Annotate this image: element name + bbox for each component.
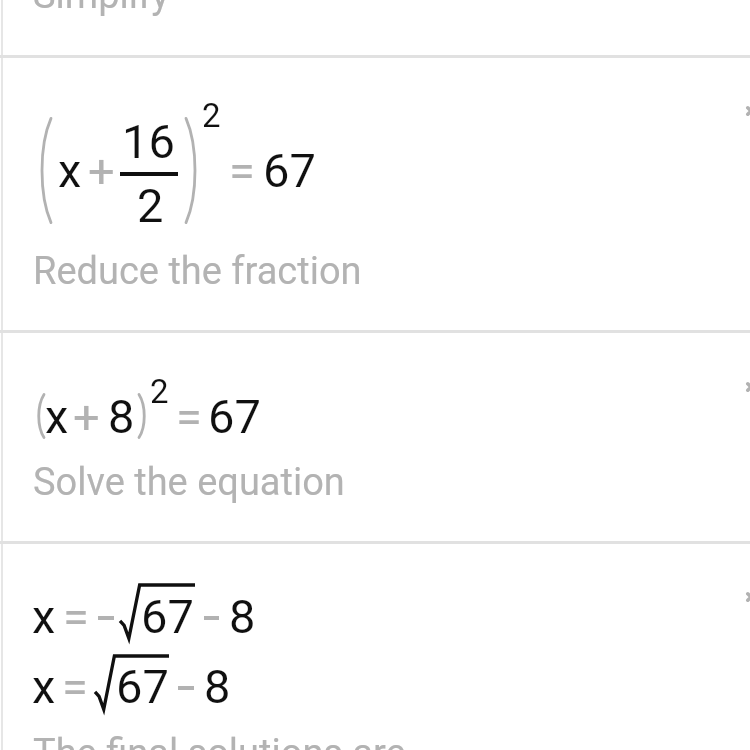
staticText: =	[229, 143, 255, 198]
staticText: +	[73, 389, 100, 444]
staticText: +	[88, 143, 115, 198]
staticText: 67	[116, 659, 169, 714]
staticText: =	[63, 589, 89, 644]
staticText: 67	[208, 389, 261, 444]
staticText: 2	[137, 178, 164, 233]
button[interactable]	[0, 57, 750, 331]
button[interactable]	[0, 333, 750, 541]
staticText: =	[176, 389, 202, 444]
button[interactable]: Expand step	[723, 569, 750, 625]
staticText: 67	[141, 589, 194, 644]
staticText: =	[62, 659, 88, 714]
staticText: x	[45, 389, 69, 444]
staticText: The final solutions are	[33, 731, 406, 750]
staticText: Reduce the fraction	[33, 249, 362, 294]
staticText: 16	[122, 114, 175, 169]
staticText: 67	[263, 143, 316, 198]
button[interactable]: Expand step	[723, 83, 750, 139]
staticText: Simplify	[33, 0, 170, 18]
staticText: 8	[108, 389, 135, 444]
staticText: x	[58, 143, 82, 198]
button[interactable]: Expand step	[723, 359, 750, 415]
button[interactable]	[0, 543, 750, 750]
staticText: x	[32, 589, 56, 644]
staticText: x	[32, 659, 56, 714]
button[interactable]	[0, 0, 750, 55]
staticText: 8	[229, 589, 256, 644]
staticText: Solve the equation	[33, 460, 345, 505]
staticText: 2	[150, 372, 169, 411]
staticText: 2	[202, 96, 221, 135]
staticText: 8	[204, 659, 231, 714]
